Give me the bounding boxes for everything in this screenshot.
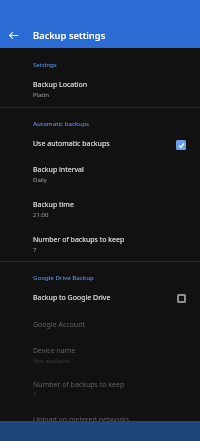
button[interactable] xyxy=(0,312,200,338)
button[interactable] xyxy=(0,75,200,102)
staticText: 21:00 xyxy=(33,211,173,219)
staticText: Device name xyxy=(33,346,173,356)
staticText: 7 xyxy=(33,246,173,254)
staticText: Backup time xyxy=(33,200,173,210)
staticText: Number of backups to keep xyxy=(33,235,173,245)
button[interactable] xyxy=(0,53,200,79)
staticText: Automatic backups xyxy=(33,119,89,127)
button[interactable] xyxy=(0,338,200,364)
staticText: Backup to Google Drive xyxy=(33,293,173,303)
button[interactable] xyxy=(0,286,200,309)
staticText: Backup Location xyxy=(33,80,173,90)
staticText: Backup interval xyxy=(33,165,173,175)
staticText: Number of backups to keep xyxy=(33,380,173,390)
staticText: Not available xyxy=(33,357,173,365)
staticText: Google Drive Backup xyxy=(33,273,94,281)
button[interactable]: Back xyxy=(1,23,25,47)
button[interactable] xyxy=(0,372,200,405)
staticText: Backup settings xyxy=(33,29,106,42)
button[interactable] xyxy=(0,227,200,260)
staticText: Upload on metered networks xyxy=(33,415,173,425)
button[interactable] xyxy=(0,131,200,154)
button[interactable] xyxy=(0,192,200,227)
button[interactable] xyxy=(0,408,200,432)
staticText: Platin xyxy=(33,91,173,99)
staticText: Google Account xyxy=(33,320,173,330)
staticText: Settings xyxy=(33,60,57,68)
staticText: Use automatic backups xyxy=(33,139,173,149)
staticText: Daily xyxy=(33,176,173,184)
button[interactable] xyxy=(0,157,200,183)
